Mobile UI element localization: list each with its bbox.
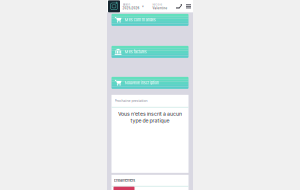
button[interactable]: Mes commandes <box>111 14 188 26</box>
staticText: Nouvelle inscription <box>125 80 159 85</box>
staticText: 2025/2026 <box>122 6 139 10</box>
staticText: Nicole <box>152 3 162 6</box>
button[interactable]: Log out <box>176 4 181 9</box>
staticText: Vous n'êtes inscrit à aucun <box>118 111 182 117</box>
button[interactable]: Home <box>108 0 120 12</box>
staticText: type de pratique <box>130 117 169 124</box>
staticText: saison <box>122 3 130 6</box>
button[interactable]: Menu <box>186 4 191 8</box>
staticText: Prochaine prestation <box>114 99 147 103</box>
staticText: Mes factures <box>125 49 147 54</box>
button[interactable]: Nouvelle inscription <box>111 77 188 89</box>
button[interactable]: Mes factures <box>111 46 188 58</box>
staticText: Valentine <box>152 6 167 10</box>
staticText: Entraînement <box>114 178 135 183</box>
staticText: ▾ <box>142 4 144 8</box>
staticText: Mes commandes <box>125 17 156 22</box>
